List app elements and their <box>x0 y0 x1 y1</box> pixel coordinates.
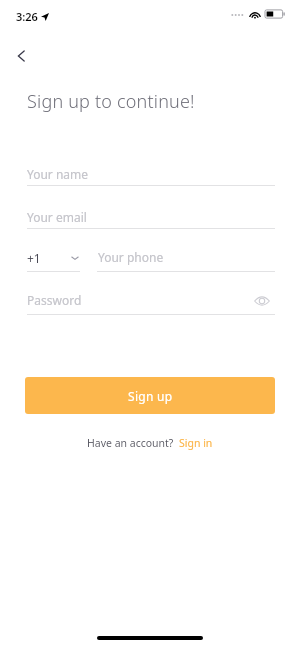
button[interactable]: Your phone <box>98 249 275 265</box>
staticText: +1 <box>27 250 41 266</box>
button[interactable]: Show password <box>248 287 276 315</box>
button[interactable]: Sign in <box>179 436 213 450</box>
button[interactable]: +1 <box>27 246 80 270</box>
button[interactable]: Sign up <box>25 377 275 414</box>
staticText: Sign in <box>179 436 213 450</box>
staticText: Have an account? <box>87 436 174 450</box>
staticText: Sign up to continue! <box>27 89 195 114</box>
button[interactable]: Back <box>6 40 38 72</box>
staticText: Sign up <box>128 388 173 404</box>
button[interactable]: Your name <box>27 166 275 182</box>
button[interactable]: Password <box>27 292 227 308</box>
button[interactable]: Your email <box>27 209 275 225</box>
staticText: 3:26 <box>16 9 38 24</box>
